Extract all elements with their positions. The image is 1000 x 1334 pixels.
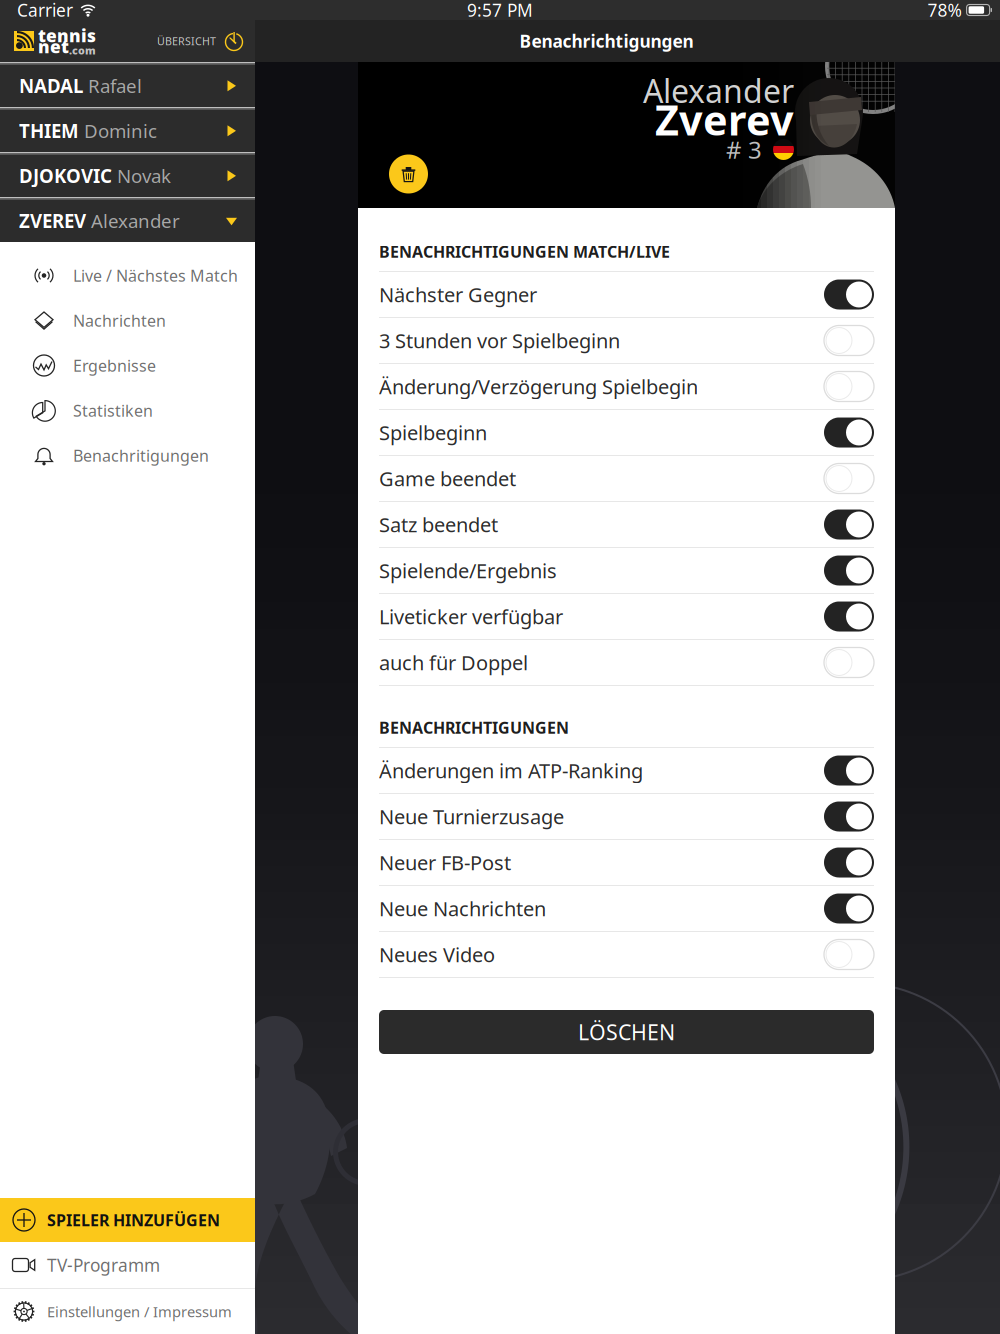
- button[interactable]: Umschalten: [824, 939, 874, 969]
- staticText: Neue Nachrichten: [379, 895, 546, 922]
- staticText: Neuer FB-Post: [379, 849, 511, 876]
- staticText: tennis: [38, 24, 96, 47]
- staticText: Ergebnisse: [73, 355, 156, 376]
- staticText: Satz beendet: [379, 511, 498, 538]
- button[interactable]: Umschalten: [824, 371, 874, 401]
- button[interactable]: TV-Programm: [0, 1242, 255, 1288]
- staticText: 78%: [928, 0, 962, 21]
- button[interactable]: Umschalten: [824, 325, 874, 355]
- staticText: Änderungen im ATP-Ranking: [379, 757, 643, 784]
- button[interactable]: ZVEREV: [0, 200, 255, 242]
- staticText: Benachritigungen: [73, 445, 209, 466]
- staticText: Zverev: [655, 92, 794, 147]
- staticText: 3 Stunden vor Spielbeginn: [379, 327, 620, 354]
- button[interactable]: Umschalten: [824, 755, 874, 785]
- staticText: THIEM: [19, 118, 79, 143]
- staticText: net: [38, 35, 69, 58]
- button[interactable]: Umschalten: [824, 801, 874, 831]
- staticText: LÖSCHEN: [578, 1018, 675, 1046]
- staticText: Nächster Gegner: [379, 281, 537, 308]
- staticText: Rafael: [83, 73, 142, 98]
- button[interactable]: Umschalten: [824, 555, 874, 585]
- button[interactable]: Umschalten: [824, 279, 874, 309]
- button[interactable]: Ergebnisse: [0, 343, 255, 388]
- button[interactable]: Umschalten: [824, 601, 874, 631]
- staticText: Benachrichtigungen: [519, 29, 693, 52]
- staticText: DJOKOVIC: [19, 163, 112, 188]
- staticText: SPIELER HINZUFÜGEN: [47, 1209, 220, 1231]
- button[interactable]: NADAL: [0, 65, 255, 107]
- button[interactable]: Einstellungen / Impressum: [0, 1289, 255, 1334]
- button[interactable]: DJOKOVIC: [0, 155, 255, 197]
- button[interactable]: Spieler löschen: [389, 154, 428, 193]
- staticText: Spielbeginn: [379, 419, 487, 446]
- staticText: Alexander: [643, 69, 794, 112]
- button[interactable]: Umschalten: [824, 463, 874, 493]
- button[interactable]: Umschalten: [824, 893, 874, 923]
- staticText: 9:57 PM: [467, 0, 533, 21]
- button[interactable]: THIEM: [0, 110, 255, 152]
- button[interactable]: SPIELER HINZUFÜGEN: [0, 1198, 255, 1242]
- button[interactable]: ÜBERSICHT: [157, 29, 245, 53]
- staticText: Live / Nächstes Match: [73, 265, 238, 286]
- button[interactable]: Benachritigungen: [0, 433, 255, 478]
- button[interactable]: Umschalten: [824, 647, 874, 677]
- staticText: .com: [69, 43, 96, 57]
- staticText: BENACHRICHTIGUNGEN: [379, 717, 569, 738]
- staticText: Spielende/Ergebnis: [379, 557, 557, 584]
- staticText: Neue Turnierzusage: [379, 803, 564, 830]
- button[interactable]: Statistiken: [0, 388, 255, 433]
- staticText: ZVEREV: [19, 208, 86, 233]
- staticText: Dominic: [79, 118, 157, 143]
- staticText: ÜBERSICHT: [157, 34, 216, 48]
- staticText: Liveticker verfügbar: [379, 603, 563, 630]
- staticText: TV-Programm: [47, 1253, 160, 1276]
- button[interactable]: Live / Nächstes Match: [0, 253, 255, 298]
- staticText: Einstellungen / Impressum: [47, 1302, 232, 1321]
- button[interactable]: Umschalten: [824, 509, 874, 539]
- button[interactable]: Nachrichten: [0, 298, 255, 343]
- staticText: Carrier: [17, 0, 73, 21]
- staticText: # 3: [726, 134, 762, 165]
- button[interactable]: Umschalten: [824, 417, 874, 447]
- button[interactable]: Umschalten: [824, 847, 874, 877]
- staticText: Änderung/Verzögerung Spielbegin: [379, 373, 698, 400]
- staticText: Alexander: [86, 208, 180, 233]
- staticText: NADAL: [19, 73, 83, 98]
- staticText: BENACHRICHTIGUNGEN MATCH/LIVE: [379, 241, 670, 262]
- staticText: auch für Doppel: [379, 649, 528, 676]
- staticText: Statistiken: [73, 400, 153, 421]
- button[interactable]: LÖSCHEN: [379, 1010, 874, 1054]
- staticText: Novak: [112, 163, 171, 188]
- staticText: Game beendet: [379, 465, 516, 492]
- staticText: Nachrichten: [73, 310, 166, 331]
- staticText: Neues Video: [379, 941, 495, 968]
